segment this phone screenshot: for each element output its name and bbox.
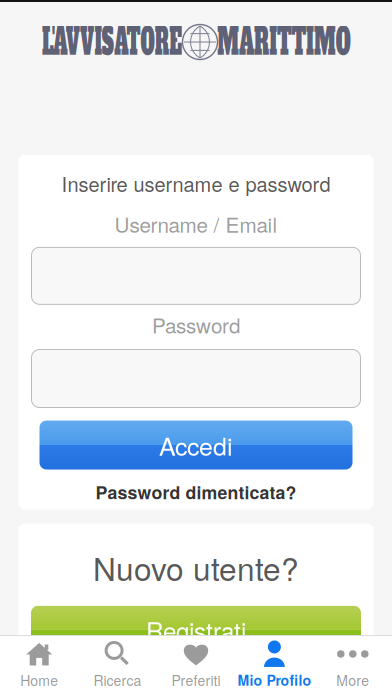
staticText: Accedi [159, 427, 233, 463]
button[interactable]: Mio Profilo [235, 635, 314, 696]
staticText: L'AVVISATORE [0, 17, 253, 67]
staticText: Mio Profilo [237, 670, 311, 690]
button[interactable]: Preferiti [157, 635, 235, 696]
staticText: Ricerca [94, 670, 142, 690]
staticText: More [336, 670, 369, 690]
button[interactable]: Home [0, 635, 78, 696]
staticText: MARITTIMO [155, 17, 392, 67]
button[interactable]: Registrati [31, 606, 361, 654]
button[interactable]: Ricerca [78, 635, 157, 696]
button[interactable]: More [314, 635, 392, 696]
staticText: Inserire username e password [61, 169, 330, 198]
button[interactable]: Accedi [39, 420, 352, 469]
staticText: Nuovo utente? [93, 545, 299, 590]
button[interactable]: Password dimenticata? [85, 469, 306, 510]
staticText: Registrati [146, 612, 246, 647]
staticText: Password dimenticata? [95, 479, 296, 505]
staticText: Preferiti [171, 670, 220, 690]
staticText: Home [20, 670, 58, 690]
staticText: Password [152, 310, 240, 339]
staticText: Username / Email [114, 209, 277, 239]
